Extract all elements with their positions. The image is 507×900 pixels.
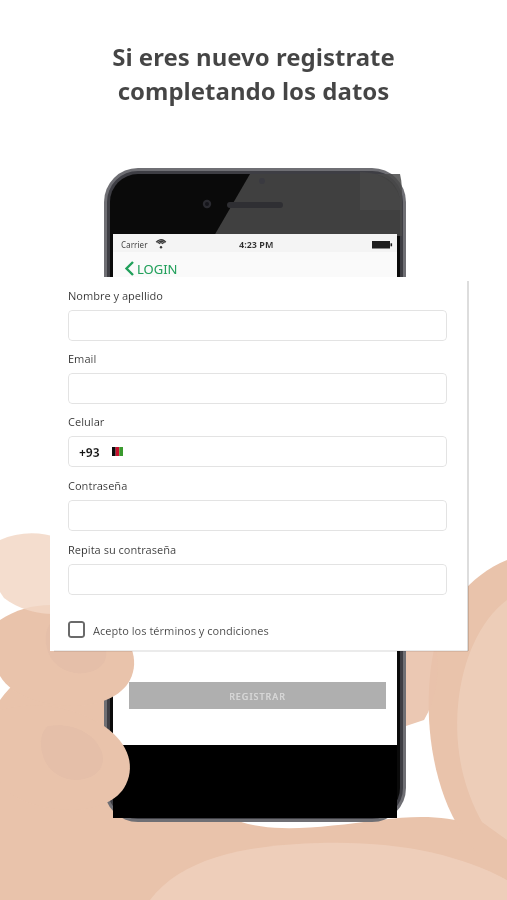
- button[interactable]: Acepto los términos y condiciones: [64, 617, 314, 643]
- staticText: Celular: [68, 414, 105, 429]
- staticText: Repita su contraseña: [68, 542, 177, 557]
- button[interactable]: LOGIN: [137, 260, 178, 278]
- button[interactable]: [68, 500, 447, 531]
- staticText: +93: [79, 444, 100, 460]
- staticText: Acepto los términos y condiciones: [93, 623, 269, 638]
- button[interactable]: [68, 310, 447, 341]
- staticText: Carrier: [121, 239, 148, 250]
- button[interactable]: [68, 564, 447, 595]
- other: Country flag: [112, 447, 123, 456]
- staticText: Contraseña: [68, 478, 128, 493]
- staticText: Si eres nuevo registrate completando los…: [0, 40, 507, 107]
- button[interactable]: [68, 373, 447, 404]
- staticText: 4:23 PM: [239, 238, 274, 250]
- button[interactable]: +93: [68, 436, 447, 467]
- staticText: REGISTRAR: [129, 690, 386, 702]
- button[interactable]: REGISTRAR: [129, 682, 386, 709]
- staticText: Email: [68, 351, 97, 366]
- staticText: Nombre y apellido: [68, 288, 163, 303]
